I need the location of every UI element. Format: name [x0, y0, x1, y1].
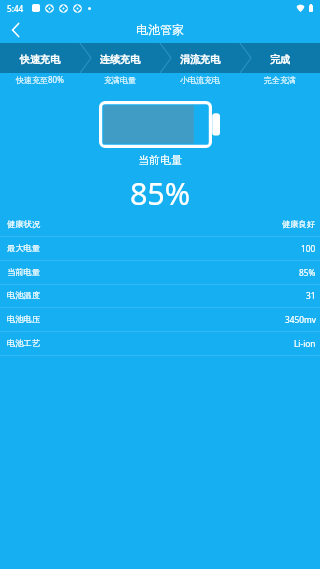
- staticText: 3450mv: [285, 314, 316, 325]
- staticText: 完全充满: [264, 75, 296, 85]
- staticText: 快速充至80%: [16, 74, 64, 85]
- staticText: 电池工艺: [7, 338, 41, 348]
- staticText: 当前电量: [7, 267, 41, 277]
- staticText: 连续充电: [100, 53, 140, 66]
- button[interactable]: Back: [0, 16, 30, 43]
- staticText: 100: [301, 243, 316, 254]
- staticText: 完成: [270, 53, 290, 66]
- button[interactable]: 电池温度: [0, 283, 320, 307]
- staticText: 31: [306, 290, 316, 301]
- staticText: 健康状况: [7, 219, 41, 229]
- staticText: 最大电量: [7, 243, 41, 253]
- staticText: 充满电量: [104, 75, 136, 85]
- staticText: 电池电压: [7, 314, 41, 324]
- button[interactable]: 电池电压: [0, 307, 320, 331]
- staticText: 涓流充电: [180, 53, 220, 66]
- staticText: 电池温度: [7, 290, 41, 300]
- button[interactable]: 连续充电: [80, 43, 160, 73]
- staticText: 85%: [0, 172, 320, 214]
- button[interactable]: 涓流充电: [160, 43, 240, 73]
- staticText: 85%: [299, 267, 316, 278]
- staticText: Li-ion: [294, 338, 316, 349]
- button[interactable]: 最大电量: [0, 236, 320, 260]
- button[interactable]: 健康状况: [0, 212, 320, 236]
- staticText: 电池管家: [136, 22, 184, 37]
- staticText: 小电流充电: [180, 75, 220, 85]
- staticText: 健康良好: [282, 219, 316, 229]
- button[interactable]: 快速充电: [0, 43, 80, 73]
- button[interactable]: 电池工艺: [0, 331, 320, 355]
- staticText: 5:44: [7, 3, 24, 14]
- button[interactable]: 当前电量: [0, 260, 320, 284]
- button[interactable]: 完成: [240, 43, 320, 73]
- staticText: 快速充电: [20, 53, 60, 66]
- staticText: 当前电量: [0, 154, 320, 168]
